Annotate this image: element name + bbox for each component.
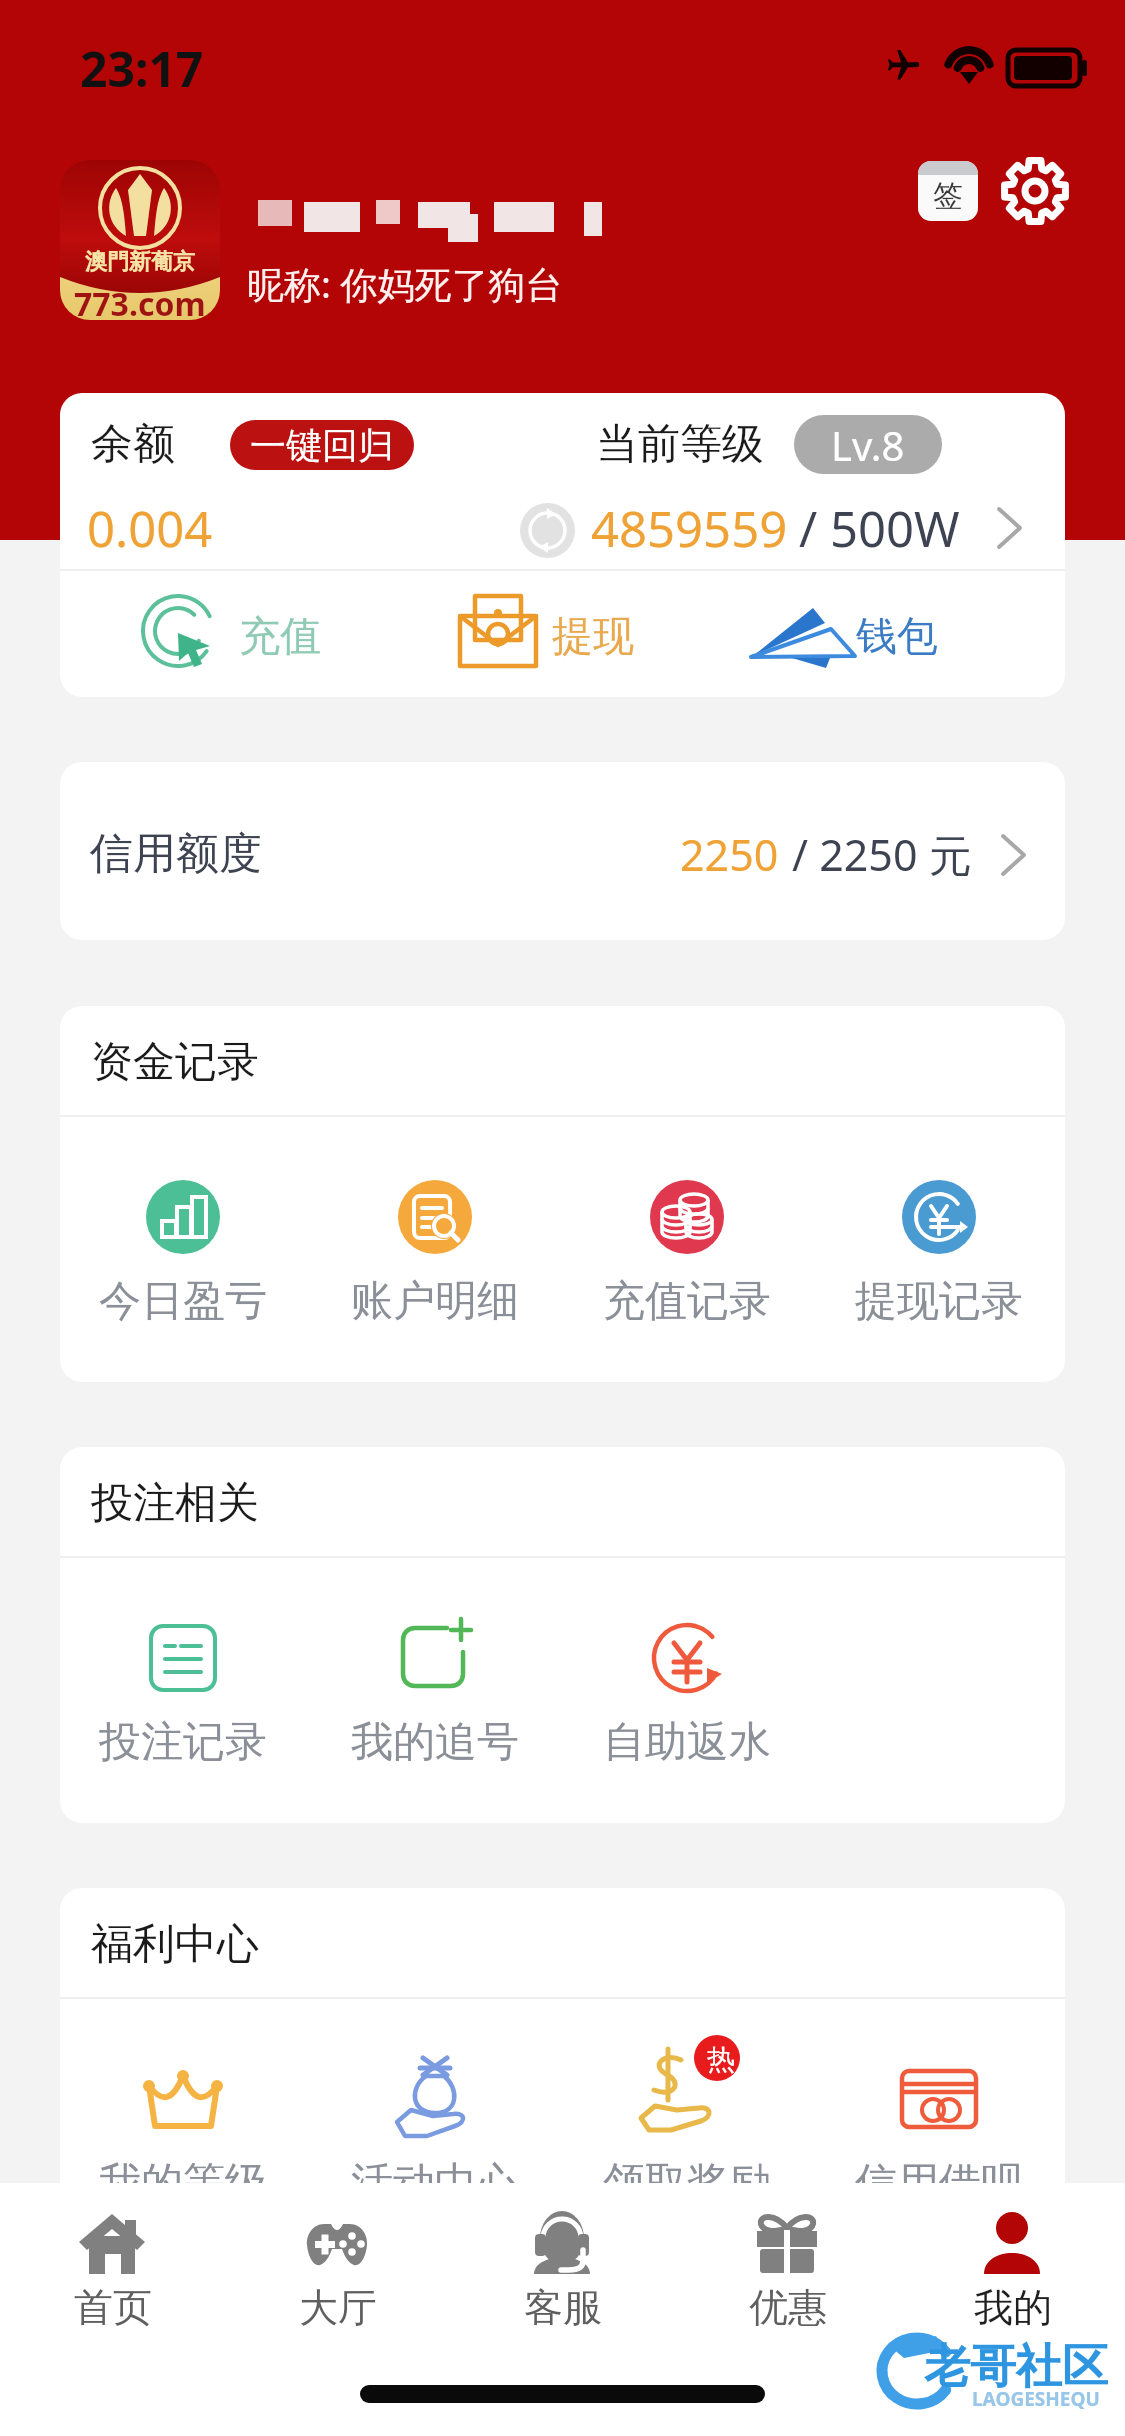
- button[interactable]: 我的追号: [310, 1597, 560, 1787]
- button[interactable]: 一键回归: [230, 420, 414, 470]
- button[interactable]: 优惠: [675, 2190, 900, 2350]
- staticText: 信用额度: [90, 827, 262, 881]
- button[interactable]: 账户明细: [310, 1156, 560, 1346]
- staticText: 余额: [91, 418, 175, 471]
- button[interactable]: 充值: [120, 570, 360, 710]
- staticText: 我的等级: [99, 2157, 267, 2210]
- button[interactable]: 自助返水: [562, 1597, 812, 1787]
- staticText: 资金记录: [91, 1036, 259, 1089]
- staticText: Lv.8: [831, 418, 905, 472]
- staticText: 当前等级: [596, 418, 764, 471]
- staticText: 领取奖励: [603, 2157, 771, 2210]
- staticText: 我的: [974, 2283, 1052, 2332]
- button[interactable]: 今日盈亏: [58, 1156, 308, 1346]
- staticText: 投注相关: [91, 1477, 259, 1530]
- staticText: 活动中心: [351, 2157, 519, 2210]
- staticText: 一键回归: [250, 423, 394, 468]
- button[interactable]: 钱包: [740, 570, 980, 710]
- button[interactable]: 充值记录: [562, 1156, 812, 1346]
- button[interactable]: 首页: [0, 2190, 225, 2350]
- staticText: 投注记录: [99, 1716, 267, 1769]
- staticText: 4859559: [591, 495, 788, 562]
- staticText: 773.com: [74, 282, 206, 320]
- staticText: 提现记录: [855, 1275, 1023, 1328]
- staticText: 23:17: [80, 36, 204, 101]
- staticText: 客服: [524, 2283, 602, 2332]
- button[interactable]: [60, 762, 1065, 940]
- staticText: 签: [933, 177, 963, 215]
- staticText: 首页: [74, 2283, 152, 2332]
- button[interactable]: 活动中心: [310, 2038, 560, 2228]
- button[interactable]: 投注记录: [58, 1597, 308, 1787]
- staticText: / 2250 元: [792, 825, 972, 884]
- button[interactable]: 签到: [918, 161, 978, 221]
- staticText: / 500W: [799, 495, 960, 562]
- staticText: 充值: [239, 611, 321, 663]
- staticText: 福利中心: [91, 1918, 259, 1971]
- button[interactable]: 提现记录: [814, 1156, 1064, 1346]
- staticText: 自助返水: [603, 1716, 771, 1769]
- button[interactable]: 领取奖励: [562, 2038, 812, 2228]
- staticText: 信用借呗: [855, 2157, 1023, 2210]
- staticText: 我的追号: [351, 1716, 519, 1769]
- staticText: 2250: [680, 825, 779, 884]
- button[interactable]: 我的: [900, 2190, 1125, 2350]
- button[interactable]: 我的等级: [58, 2038, 308, 2228]
- staticText: 提现: [552, 611, 634, 663]
- staticText: 澳門新葡京: [85, 248, 195, 276]
- button[interactable]: 设置: [1002, 158, 1068, 224]
- staticText: 热: [707, 2042, 735, 2077]
- staticText: 大厅: [299, 2283, 377, 2332]
- staticText: 昵称: 你妈死了狗台: [247, 258, 563, 309]
- staticText: 优惠: [749, 2283, 827, 2332]
- button[interactable]: 当前等级 4859559 / 500W: [500, 405, 1065, 565]
- staticText: 老哥社区: [924, 2338, 1108, 2396]
- staticText: 今日盈亏: [99, 1275, 267, 1328]
- staticText: LAOGESHEQU: [972, 2386, 1100, 2412]
- button[interactable]: 用户头像: [60, 160, 220, 320]
- staticText: 账户明细: [351, 1275, 519, 1328]
- button[interactable]: 提现: [438, 570, 678, 710]
- staticText: 钱包: [856, 611, 938, 663]
- staticText: 0.004: [87, 495, 213, 562]
- button[interactable]: 信用借呗: [814, 2038, 1064, 2228]
- button[interactable]: 客服: [450, 2190, 675, 2350]
- button[interactable]: 大厅: [225, 2190, 450, 2350]
- staticText: 充值记录: [603, 1275, 771, 1328]
